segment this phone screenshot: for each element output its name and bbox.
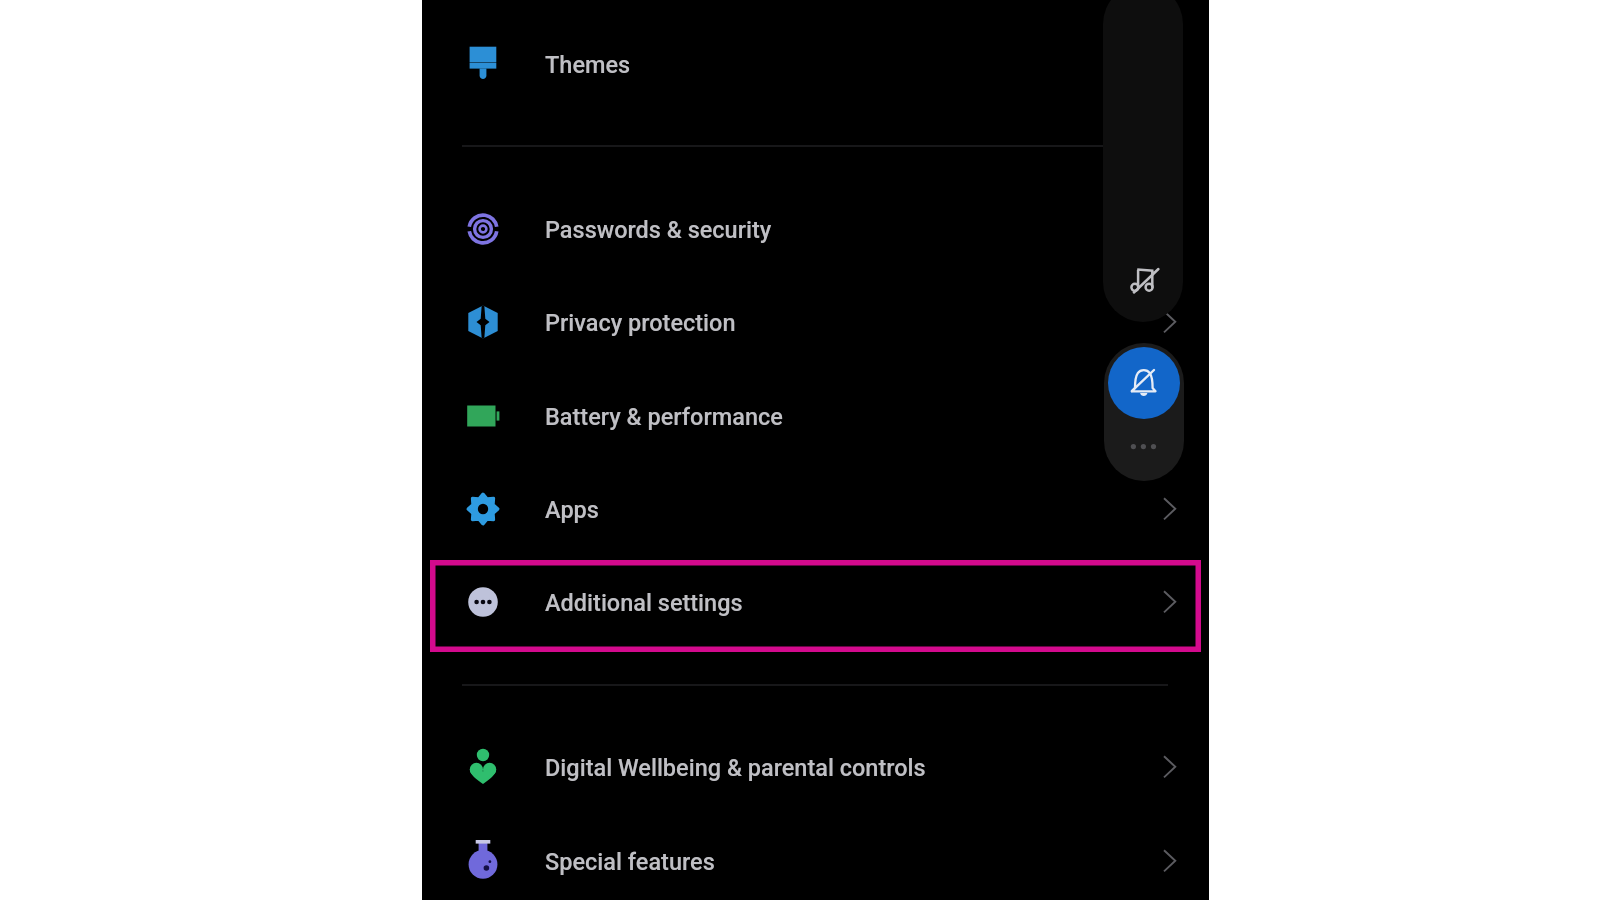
button[interactable]: Passwords & security xyxy=(422,183,1209,275)
button[interactable]: Themes xyxy=(422,18,1209,110)
button[interactable]: Digital Wellbeing & parental controls xyxy=(422,721,1209,813)
staticText: Apps xyxy=(545,496,599,524)
other: Mute media xyxy=(1127,262,1163,298)
button[interactable]: Privacy protection xyxy=(422,276,1209,368)
button[interactable]: Apps xyxy=(422,463,1209,555)
button[interactable]: Do not disturb options xyxy=(1104,343,1184,481)
button[interactable]: More options xyxy=(1126,440,1162,476)
staticText: Passwords & security xyxy=(545,216,772,244)
staticText: Digital Wellbeing & parental controls xyxy=(545,754,926,782)
staticText: Themes xyxy=(545,51,631,79)
button[interactable]: Battery & performance xyxy=(422,370,1209,462)
button[interactable]: Additional settings xyxy=(422,556,1209,648)
staticText: Additional settings xyxy=(545,589,743,617)
button[interactable]: Media player xyxy=(1103,0,1183,322)
staticText: Special features xyxy=(545,848,715,876)
button[interactable]: Special features xyxy=(422,815,1209,900)
button[interactable]: Silent mode xyxy=(1108,347,1180,419)
staticText: Battery & performance xyxy=(545,403,783,431)
staticText: Privacy protection xyxy=(545,309,736,337)
